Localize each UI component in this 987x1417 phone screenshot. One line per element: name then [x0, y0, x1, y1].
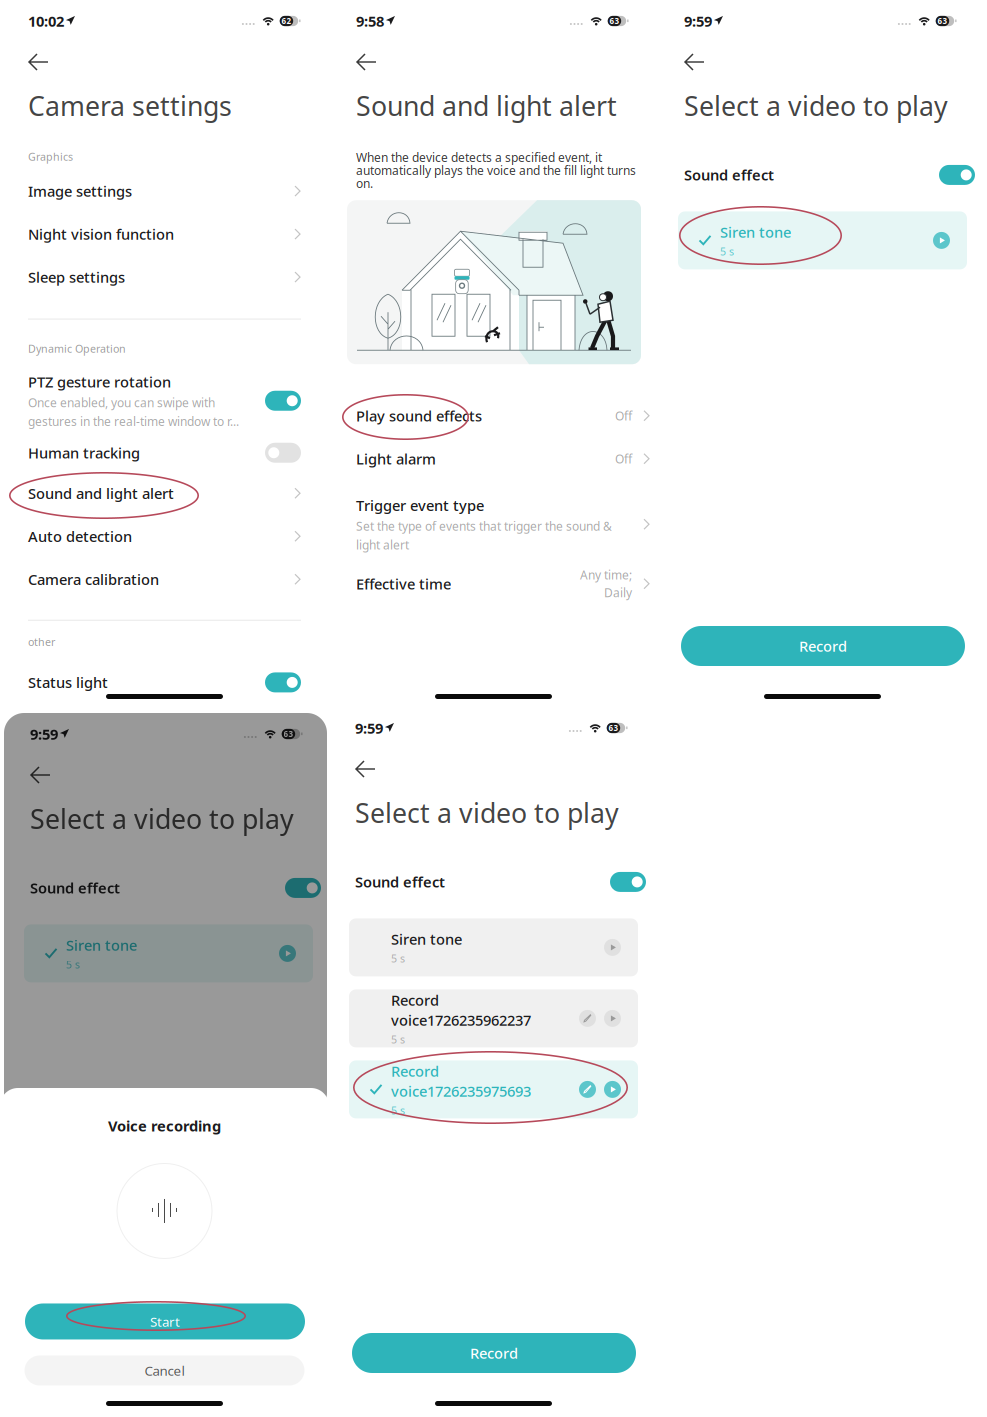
button[interactable]: Image settings: [28, 170, 301, 213]
staticText: other: [28, 635, 55, 649]
staticText: 9:59: [684, 11, 712, 31]
button[interactable]: Record: [352, 1333, 636, 1373]
staticText: Select a video to play: [355, 795, 619, 830]
button[interactable]: Back: [355, 758, 389, 780]
button[interactable]: Siren tone: [349, 918, 638, 976]
button[interactable]: Back: [356, 51, 390, 73]
staticText: Status light: [28, 673, 108, 692]
staticText: Sound and light alert: [356, 88, 617, 123]
staticText: Sleep settings: [28, 267, 125, 287]
staticText: Human tracking: [28, 443, 140, 462]
staticText: Siren tone: [391, 929, 462, 949]
staticText: on.: [356, 175, 373, 191]
staticText: 63: [283, 729, 293, 739]
button[interactable]: Trigger event type: [356, 492, 650, 556]
button[interactable]: Light alarm: [356, 437, 650, 480]
staticText: Auto detection: [28, 526, 132, 546]
staticText: Select a video to play: [30, 801, 294, 836]
button[interactable]: Sound effect: [30, 872, 321, 903]
staticText: 63: [937, 16, 947, 26]
staticText: 5 s: [720, 244, 734, 258]
button[interactable]: PTZ gesture rotation: [28, 368, 301, 434]
staticText: gestures in the real-time window to r...: [28, 413, 239, 429]
staticText: Dynamic Operation: [28, 342, 126, 356]
staticText: Camera calibration: [28, 569, 159, 589]
staticText: Any time;: [580, 567, 632, 583]
button[interactable]: Back: [30, 764, 64, 786]
staticText: Trigger event type: [356, 495, 484, 515]
button[interactable]: Back: [684, 51, 718, 73]
staticText: Select a video to play: [684, 88, 948, 123]
staticText: PTZ gesture rotation: [28, 372, 171, 392]
staticText: Off: [615, 408, 632, 424]
staticText: Voice recording: [108, 1116, 221, 1135]
staticText: Start: [150, 1313, 180, 1330]
staticText: Record: [470, 1343, 518, 1363]
button[interactable]: Cancel: [24, 1355, 304, 1385]
staticText: 5 s: [391, 1103, 405, 1117]
button[interactable]: Auto detection: [28, 515, 301, 558]
staticText: 9:58: [356, 11, 384, 31]
staticText: Daily: [604, 585, 632, 601]
button[interactable]: Effective time: [356, 562, 650, 605]
staticText: Sound effect: [355, 872, 445, 892]
staticText: Set the type of events that trigger the …: [356, 518, 612, 534]
staticText: 10:02: [28, 11, 64, 31]
staticText: 63: [608, 723, 618, 733]
staticText: 5 s: [66, 957, 80, 971]
staticText: Once enabled, you can swipe with: [28, 394, 215, 410]
button[interactable]: Sound effect: [355, 866, 646, 897]
staticText: light alert: [356, 537, 409, 553]
staticText: Siren tone: [66, 935, 137, 955]
button[interactable]: Siren tone: [678, 211, 967, 269]
staticText: Night vision function: [28, 224, 174, 244]
button[interactable]: Sound and light alert: [28, 472, 301, 515]
staticText: 5 s: [391, 951, 405, 965]
staticText: Record: [391, 1061, 439, 1081]
staticText: Off: [615, 451, 632, 467]
button[interactable]: Sleep settings: [28, 256, 301, 299]
staticText: 9:59: [355, 718, 383, 738]
button[interactable]: Siren tone: [24, 924, 313, 982]
staticText: Play sound effects: [356, 406, 482, 425]
staticText: Record: [799, 636, 847, 656]
staticText: Camera settings: [28, 88, 232, 123]
button[interactable]: Human tracking: [28, 434, 301, 472]
button[interactable]: Night vision function: [28, 213, 301, 256]
staticText: Sound and light alert: [28, 483, 174, 503]
staticText: Graphics: [28, 149, 73, 164]
button[interactable]: Record: [349, 1060, 638, 1118]
staticText: When the device detects a specified even…: [356, 149, 602, 165]
button[interactable]: Play sound effects: [356, 394, 650, 437]
staticText: Sound effect: [684, 165, 774, 185]
staticText: Record: [391, 990, 439, 1010]
staticText: 9:59: [30, 724, 58, 744]
button[interactable]: Sound effect: [684, 159, 975, 190]
staticText: 62: [281, 16, 291, 26]
staticText: automatically plays the voice and the fi…: [356, 162, 636, 178]
staticText: Effective time: [356, 574, 451, 593]
staticText: Siren tone: [720, 222, 791, 242]
staticText: Light alarm: [356, 449, 436, 468]
button[interactable]: Record: [681, 626, 965, 666]
staticText: voice1726235975693: [391, 1081, 531, 1101]
staticText: Cancel: [144, 1362, 184, 1379]
staticText: Sound effect: [30, 878, 120, 898]
button[interactable]: Back: [28, 51, 62, 73]
button[interactable]: Record: [349, 989, 638, 1047]
staticText: 5 s: [391, 1032, 405, 1046]
button[interactable]: Status light: [28, 661, 301, 704]
staticText: 63: [609, 16, 619, 26]
staticText: voice1726235962237: [391, 1010, 531, 1030]
button[interactable]: Start: [24, 1303, 305, 1339]
button[interactable]: Camera calibration: [28, 558, 301, 601]
staticText: Image settings: [28, 181, 132, 201]
